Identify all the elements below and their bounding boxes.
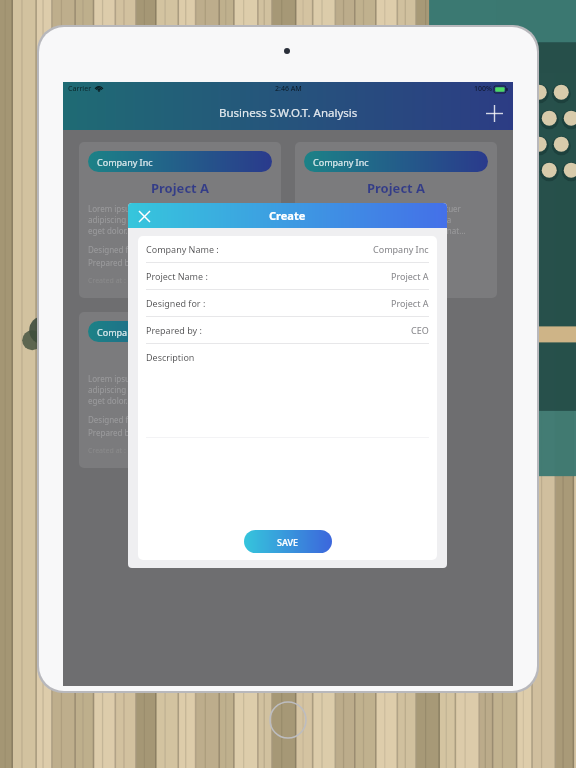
staticText: SAVE [277, 536, 299, 548]
staticText: Lorem ipsum dolor sit amet, consectetuer… [304, 203, 466, 236]
staticText: Prepared by : CEO [88, 257, 156, 268]
staticText: Create [269, 208, 306, 223]
staticText: Prepared by : CEO [304, 257, 372, 268]
staticText: 100% [474, 84, 492, 94]
staticText: Prepared by : [146, 324, 202, 336]
staticText: Lorem ipsum dolor sit amet, consectetuer… [88, 203, 250, 236]
staticText: Business S.W.O.T. Analysis [219, 105, 358, 121]
button[interactable]: Company Inc [295, 142, 497, 298]
staticText: Description [146, 351, 195, 363]
staticText: Designed for : Project A [88, 414, 177, 425]
button[interactable]: Description [138, 344, 437, 370]
staticText: Company Inc [97, 326, 153, 338]
staticText: Prepared by : CEO [88, 427, 156, 438]
staticText: Created at : 11 Aug 2017 02:46 AM [88, 446, 201, 456]
staticText: Lorem ipsum dolor sit amet, consectetuer… [88, 373, 250, 406]
staticText: Project A [391, 270, 429, 282]
button[interactable]: Company Name : [138, 236, 437, 263]
staticText: Project A [367, 179, 426, 197]
button[interactable]: Designed for : [138, 290, 437, 317]
button[interactable]: Close [133, 205, 155, 227]
staticText: CEO [411, 324, 429, 336]
staticText: Project Name : [146, 270, 208, 282]
staticText: Project A [391, 297, 429, 309]
staticText: Designed for : Project A [304, 244, 393, 255]
staticText: Carrier [68, 84, 92, 94]
staticText: Project A [151, 179, 210, 197]
staticText: 2:46 AM [275, 84, 302, 94]
staticText: Company Inc [313, 156, 369, 168]
staticText: Project A [151, 349, 210, 367]
button[interactable]: Company Inc [79, 312, 281, 468]
staticText: Company Inc [373, 243, 429, 255]
button[interactable]: Project Name : [138, 263, 437, 290]
staticText: Company Name : [146, 243, 219, 255]
button[interactable]: Company Inc [79, 142, 281, 298]
staticText: Designed for : [146, 297, 206, 309]
button[interactable]: Add new analysis [481, 100, 507, 126]
button[interactable]: Prepared by : [138, 317, 437, 344]
staticText: Company Inc [97, 156, 153, 168]
staticText: Last updated : 11 Aug 2017 02:46 AM [88, 287, 210, 289]
button[interactable]: SAVE [244, 530, 332, 553]
staticText: Designed for : Project A [88, 244, 177, 255]
staticText: Last updated : 11 Aug 2017 02:46 AM [88, 457, 210, 459]
staticText: Created at : 11 Aug 2017 02:46 AM [88, 276, 201, 286]
staticText: Created at : 11 Aug 2017 02:46 AM [304, 276, 417, 286]
